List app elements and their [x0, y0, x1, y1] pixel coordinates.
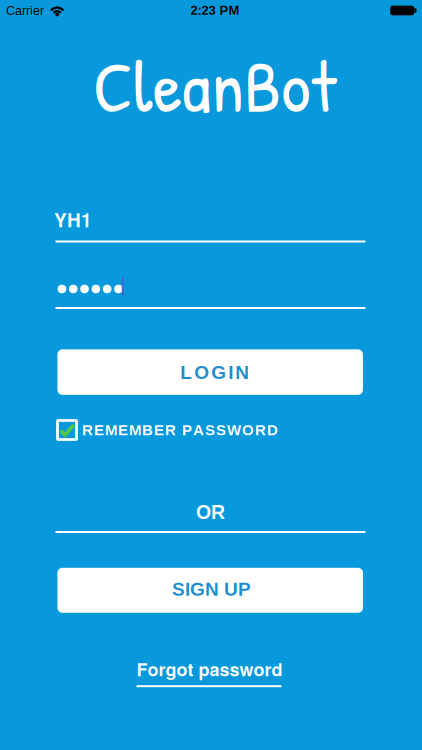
staticText: YH1 [54, 206, 92, 233]
button[interactable]: Password [56, 262, 366, 310]
button[interactable]: L O G I N [57, 349, 363, 395]
staticText: L O G I N [180, 362, 249, 383]
button[interactable]: SIGN UP [57, 568, 363, 613]
staticText: Forgot password [136, 656, 282, 682]
button[interactable]: Username [56, 193, 366, 241]
staticText: CleanBot [93, 35, 336, 135]
staticText: R E M E M B E R P A S S W O R D [82, 422, 278, 438]
button[interactable]: Forgot password [131, 656, 287, 690]
staticText: Carrier [6, 4, 44, 18]
staticText: SIGN UP [172, 579, 251, 600]
button[interactable]: R E M E M B E R P A S S W O R D [56, 417, 366, 443]
staticText: OR [196, 501, 225, 523]
staticText: 2:23 PM [190, 3, 239, 17]
